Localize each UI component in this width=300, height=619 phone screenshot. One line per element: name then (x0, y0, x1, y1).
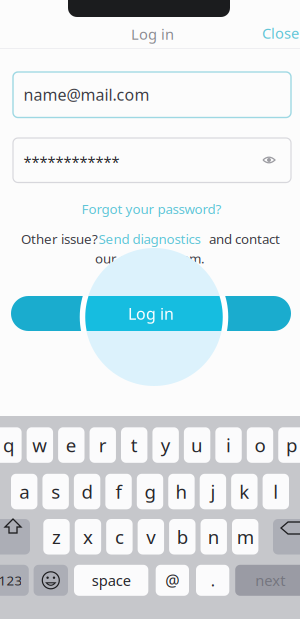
button[interactable]: . (196, 565, 229, 596)
staticText: k (239, 479, 249, 504)
staticText: name@mail.com (23, 84, 149, 105)
button[interactable]: e (58, 427, 84, 463)
staticText: j (210, 479, 215, 504)
staticText: Send diagnostics (98, 230, 200, 248)
button[interactable]: Emoji (34, 565, 68, 596)
button[interactable]: Log in (11, 296, 291, 331)
staticText: t (131, 433, 138, 457)
staticText: d (82, 479, 93, 504)
staticText: e (66, 433, 77, 457)
staticText: b (177, 524, 188, 549)
staticText: ************ (23, 152, 119, 171)
button[interactable]: space (74, 565, 148, 596)
button[interactable]: next (235, 565, 300, 596)
staticText: l (273, 479, 278, 504)
button[interactable]: v (138, 519, 164, 554)
button[interactable]: u (184, 427, 210, 463)
staticText: @ (165, 570, 179, 591)
staticText: y (161, 433, 171, 457)
staticText: u (191, 433, 203, 457)
staticText: and contact (209, 230, 280, 248)
staticText: Other issue? (21, 230, 101, 248)
button[interactable]: Send diagnostics (98, 230, 200, 248)
staticText: m (237, 524, 254, 549)
staticText: r (99, 433, 107, 457)
staticText: space (92, 571, 131, 590)
staticText: a (19, 479, 29, 504)
staticText: v (146, 524, 155, 549)
button[interactable]: t (121, 427, 147, 463)
button[interactable]: z (43, 519, 70, 554)
staticText: Forgot your password? (81, 200, 221, 218)
button[interactable]: Forgot your password? (77, 197, 225, 221)
button[interactable]: d (74, 474, 100, 509)
staticText: z (52, 524, 61, 549)
button[interactable]: @ (156, 565, 189, 596)
button[interactable]: m (232, 519, 258, 554)
staticText: o (254, 433, 265, 457)
staticText: Log in (128, 303, 174, 324)
button[interactable]: f (105, 474, 132, 509)
button[interactable]: i (215, 427, 242, 463)
staticText: p (286, 433, 297, 457)
staticText: x (83, 524, 93, 549)
staticText: c (115, 524, 124, 549)
button[interactable]: j (200, 474, 226, 509)
button[interactable]: Show password (257, 148, 281, 172)
staticText: g (144, 479, 155, 504)
staticText: our success team. (95, 249, 205, 267)
staticText: s (51, 479, 60, 504)
button[interactable]: s (42, 474, 69, 509)
button[interactable]: w (27, 427, 53, 463)
button[interactable]: Close (229, 20, 299, 46)
button[interactable]: h (168, 474, 195, 509)
staticText: f (115, 479, 121, 504)
staticText: Close (262, 23, 299, 43)
button[interactable]: n (201, 519, 227, 554)
staticText: next (255, 571, 285, 590)
button[interactable]: l (263, 474, 289, 509)
staticText: 123 (0, 571, 22, 589)
staticText: i (226, 433, 231, 457)
button[interactable]: r (89, 427, 116, 463)
button[interactable]: g (137, 474, 163, 509)
staticText: w (32, 433, 47, 457)
button[interactable]: y (152, 427, 179, 463)
button[interactable]: q (0, 427, 22, 463)
button[interactable]: o (247, 427, 273, 463)
staticText: n (208, 524, 220, 549)
button[interactable]: a (11, 474, 37, 509)
staticText: . (211, 570, 215, 591)
button[interactable]: 123 (0, 565, 29, 596)
button[interactable]: b (169, 519, 195, 554)
staticText: q (3, 433, 14, 457)
button[interactable]: Delete (273, 519, 300, 554)
button[interactable]: k (231, 474, 258, 509)
button[interactable]: x (75, 519, 101, 554)
staticText: Log in (131, 24, 174, 44)
button[interactable]: p (278, 427, 300, 463)
button[interactable]: Shift (0, 519, 30, 554)
staticText: h (175, 479, 187, 504)
button[interactable]: c (106, 519, 133, 554)
